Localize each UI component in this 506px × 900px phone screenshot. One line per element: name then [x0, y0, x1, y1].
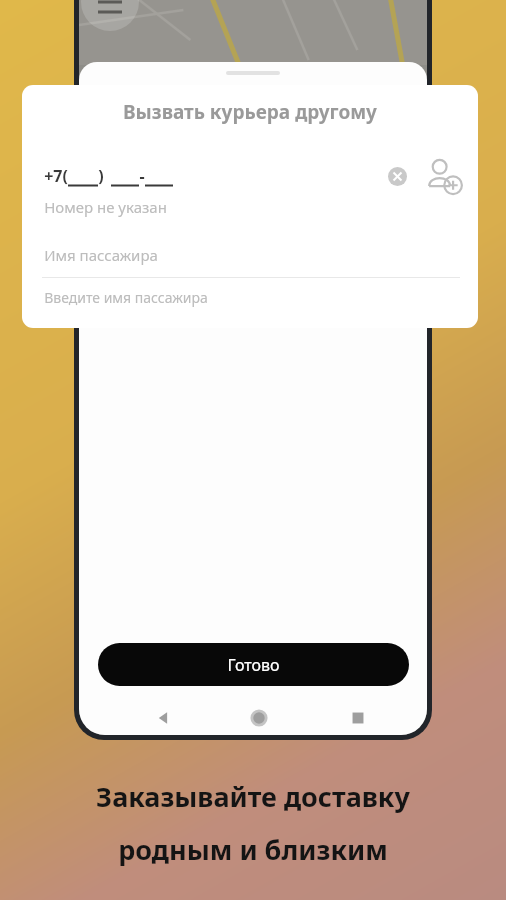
staticText: родным и близким [118, 831, 388, 868]
button[interactable]: Recent apps [345, 705, 371, 731]
staticText: Имя пассажира [44, 245, 158, 265]
staticText: Заказывайте доставку [96, 778, 410, 815]
button[interactable]: +7( [44, 165, 382, 187]
button[interactable]: Готово [98, 643, 409, 686]
staticText: - [139, 165, 145, 187]
staticText: Номер не указан [44, 197, 167, 217]
button[interactable]: Home [246, 705, 272, 731]
button[interactable]: Имя пассажира [22, 243, 478, 277]
button[interactable]: Clear [382, 161, 412, 191]
button[interactable]: Back [151, 705, 177, 731]
button[interactable]: Add from contacts [422, 155, 464, 197]
staticText: +7( [44, 165, 68, 187]
staticText: Введите имя пассажира [44, 288, 208, 307]
staticText: ) [98, 165, 104, 187]
staticText: Готово [227, 654, 280, 676]
staticText: Вызвать курьера другому [123, 99, 377, 125]
